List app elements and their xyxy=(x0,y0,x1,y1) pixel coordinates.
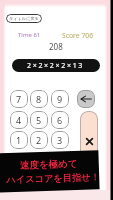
staticText: 9 xyxy=(57,93,63,105)
button[interactable]: 9 xyxy=(51,90,69,108)
button[interactable]: タイトルに戻る xyxy=(6,14,42,23)
staticText: 2×2×2×2×13 xyxy=(27,61,85,71)
button[interactable]: 5 xyxy=(30,111,48,129)
staticText: 4 xyxy=(16,114,22,126)
staticText: ハイスコアを目指せ！ xyxy=(6,171,100,186)
staticText: 208 xyxy=(49,41,63,51)
staticText: 5 xyxy=(36,114,42,126)
button[interactable]: 2×2×2×2×13 xyxy=(12,59,100,72)
staticText: Time 61 xyxy=(18,31,41,39)
staticText: 7 xyxy=(16,93,22,105)
button[interactable]: 8 xyxy=(30,90,48,108)
button[interactable]: 2 xyxy=(30,131,48,149)
staticText: 8 xyxy=(36,93,42,105)
button[interactable]: 6 xyxy=(51,111,69,129)
staticText: Score 706 xyxy=(62,31,94,40)
button[interactable]: 3 xyxy=(51,131,69,149)
staticText: 2 xyxy=(36,134,42,146)
staticText: 3 xyxy=(57,134,63,146)
button[interactable]: 4 xyxy=(10,111,28,129)
button[interactable]: 1 xyxy=(10,131,28,149)
button[interactable]: 7 xyxy=(10,90,28,108)
staticText: 1 xyxy=(16,134,22,146)
button[interactable]: Backspace xyxy=(77,90,95,108)
button[interactable]: Multiply xyxy=(80,111,98,157)
staticText: 速度を極めて xyxy=(20,158,78,172)
button[interactable]: 速度を極めて xyxy=(0,150,100,193)
staticText: タイトルに戻る xyxy=(9,16,39,21)
staticText: 6 xyxy=(57,114,63,126)
